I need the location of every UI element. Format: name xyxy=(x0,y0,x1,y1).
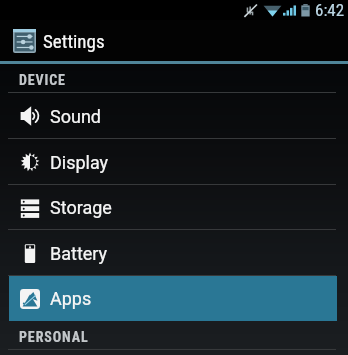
button[interactable]: Battery xyxy=(0,230,348,276)
button[interactable]: Sound xyxy=(0,93,348,139)
staticText: Settings xyxy=(43,30,105,52)
staticText: Sound xyxy=(50,106,101,127)
staticText: Storage xyxy=(50,197,112,218)
staticText: Battery xyxy=(50,243,108,264)
button[interactable]: Apps xyxy=(0,276,348,321)
staticText: 6:42 xyxy=(315,0,345,20)
button[interactable]: Display xyxy=(0,139,348,185)
other: Settings xyxy=(13,29,36,53)
staticText: Apps xyxy=(50,288,92,309)
staticText: Display xyxy=(50,152,109,173)
button[interactable]: Storage xyxy=(0,185,348,230)
staticText: DEVICE xyxy=(19,72,66,88)
staticText: PERSONAL xyxy=(19,329,89,345)
